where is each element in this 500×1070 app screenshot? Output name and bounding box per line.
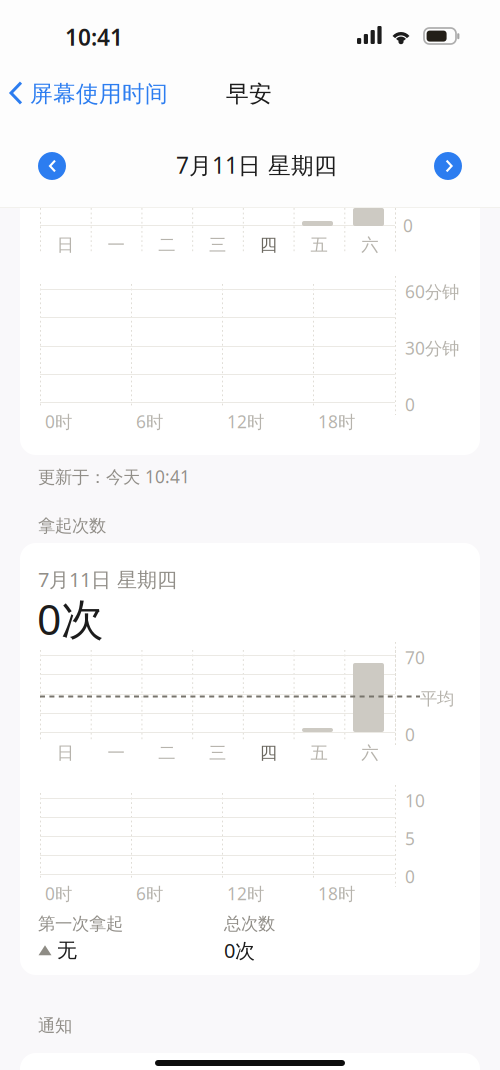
staticText: 70 xyxy=(405,646,425,669)
staticText: 6时 xyxy=(136,410,163,433)
staticText: 一 xyxy=(108,234,125,256)
staticText: 通知 xyxy=(38,1015,72,1036)
staticText: 12时 xyxy=(227,882,264,905)
staticText: 60分钟 xyxy=(405,280,459,303)
staticText: 早安 xyxy=(226,80,272,108)
staticText: 10:41 xyxy=(65,22,123,52)
staticText: 一 xyxy=(108,742,125,764)
staticText: 0时 xyxy=(45,410,72,433)
staticText: 0时 xyxy=(45,882,72,905)
button[interactable]: 屏幕使用时间 xyxy=(0,70,185,114)
button[interactable]: 前一天 xyxy=(29,143,75,189)
staticText: 0 xyxy=(403,214,413,237)
staticText: 拿起次数 xyxy=(38,515,106,536)
staticText: 18时 xyxy=(318,882,355,905)
staticText: 10 xyxy=(405,789,425,812)
staticText: 第一次拿起 xyxy=(38,913,123,934)
staticText: 5 xyxy=(405,827,415,850)
staticText: 三 xyxy=(209,742,226,764)
staticText: 三 xyxy=(209,234,226,256)
staticText: 四 xyxy=(260,742,277,764)
staticText: 五 xyxy=(310,234,327,256)
staticText: 二 xyxy=(158,234,175,256)
staticText: 6时 xyxy=(136,882,163,905)
staticText: 六 xyxy=(361,234,378,256)
staticText: 六 xyxy=(361,742,378,764)
staticText: 18时 xyxy=(318,410,355,433)
staticText: 四 xyxy=(260,234,277,256)
staticText: 12时 xyxy=(227,410,264,433)
staticText: 0 xyxy=(405,865,415,888)
staticText: 0 xyxy=(405,393,415,416)
staticText: 0次 xyxy=(37,590,104,647)
staticText: 30分钟 xyxy=(405,336,459,359)
staticText: 0 xyxy=(405,723,415,746)
staticText: 日 xyxy=(57,742,74,764)
staticText: 0次 xyxy=(224,937,255,964)
staticText: 更新于：今天 10:41 xyxy=(38,465,190,488)
button[interactable]: 后一天 xyxy=(425,143,471,189)
staticText: 总次数 xyxy=(224,913,275,934)
staticText: 日 xyxy=(57,234,74,256)
staticText: 无 xyxy=(57,938,77,963)
staticText: 7月11日 星期四 xyxy=(38,566,177,593)
staticText: 五 xyxy=(310,742,327,764)
staticText: 屏幕使用时间 xyxy=(30,80,168,108)
staticText: 二 xyxy=(158,742,175,764)
staticText: 平均 xyxy=(420,688,454,709)
staticText: 7月11日 星期四 xyxy=(176,150,337,180)
